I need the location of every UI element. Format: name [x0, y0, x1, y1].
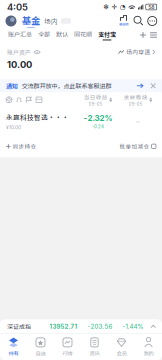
staticText: 全部 — [38, 30, 50, 38]
staticText: ✛ — [111, 3, 117, 11]
staticText: 09-05 — [129, 101, 143, 107]
button[interactable]: 持有 — [0, 334, 27, 360]
staticText: 4:05 — [7, 1, 28, 13]
button[interactable]: 通知 — [0, 79, 162, 92]
staticText: 基金吧 — [119, 22, 128, 27]
staticText: 深证成指 — [7, 322, 31, 331]
staticText: 资讯 — [89, 349, 99, 357]
button[interactable]: 基金吧 — [117, 15, 130, 26]
staticText: -0.24 — [92, 124, 104, 129]
staticText: 交流群开放中，点此联系客服进群 — [21, 81, 111, 90]
button[interactable]: 全部 — [35, 28, 53, 42]
staticText: 账户汇总 — [8, 30, 32, 38]
button[interactable]: 个人头像 — [5, 15, 17, 27]
button[interactable]: 同步持仓 — [6, 142, 37, 150]
button[interactable]: 关闭 — [143, 83, 156, 89]
button[interactable]: 标记 — [24, 94, 34, 106]
button[interactable]: 刷新 — [14, 94, 24, 106]
staticText: 会员 — [116, 349, 126, 357]
button[interactable]: 深证成指 — [0, 319, 162, 333]
staticText: -2.32% — [83, 113, 112, 123]
staticText: 我的 — [143, 349, 153, 357]
button[interactable]: 添加 — [136, 32, 150, 38]
button[interactable]: 自选 — [27, 334, 54, 360]
button[interactable]: 基金 — [17, 13, 44, 29]
staticText: 账户资产 — [7, 48, 31, 56]
button[interactable]: 永赢科技智选··· — [0, 107, 162, 135]
button[interactable]: 我的 — [135, 334, 162, 360]
staticText: 基金 — [22, 13, 40, 27]
staticText: 永赢科技智选··· — [6, 112, 69, 122]
button[interactable]: 设置 — [4, 94, 14, 106]
button[interactable]: 支付宝 — [95, 28, 119, 42]
staticText: 行情 — [62, 349, 72, 357]
staticText: -1.44% — [122, 323, 143, 330]
button[interactable]: 会员 — [108, 334, 135, 360]
button[interactable]: 场内 — [44, 16, 61, 26]
button[interactable]: 行情 — [54, 334, 81, 360]
staticText: -203.56 — [87, 323, 112, 330]
button[interactable]: 当日收益 — [84, 93, 112, 107]
staticText: 场内穿透 — [126, 48, 150, 56]
staticText: 自选 — [35, 349, 45, 357]
button[interactable]: 管理 — [150, 32, 157, 38]
button[interactable]: 批量加减仓 — [120, 142, 156, 150]
staticText: ¥10.00 — [6, 124, 21, 130]
button[interactable]: 关联板块 — [124, 93, 152, 107]
staticText: 同步持仓 — [13, 142, 37, 150]
staticText: ◔ — [120, 3, 126, 11]
staticText: 13952.71 — [49, 323, 77, 330]
button[interactable]: 视图 — [34, 94, 44, 106]
staticText: 场内 — [44, 16, 58, 26]
staticText: 默认 — [56, 30, 68, 38]
button[interactable]: 账户汇总 — [5, 28, 35, 42]
staticText: 通知 — [6, 81, 18, 90]
staticText: 09-05 — [89, 101, 103, 107]
button[interactable]: 更多 — [147, 16, 157, 26]
staticText: 当日收益 — [84, 93, 108, 101]
staticText: 关联板块 — [124, 93, 148, 101]
staticText: ✻ — [103, 3, 109, 11]
staticText: 58 — [148, 4, 154, 10]
staticText: 持有 — [8, 349, 18, 357]
staticText: — — [135, 117, 140, 125]
button[interactable]: 搜索 — [130, 16, 147, 26]
staticText: 10.00 — [7, 59, 32, 70]
staticText: 支付宝 — [98, 30, 116, 38]
staticText: 同花顺 — [74, 30, 92, 38]
staticText: 批量加减仓 — [120, 142, 150, 150]
button[interactable]: 默认 — [53, 28, 71, 42]
button[interactable]: 同花顺 — [71, 28, 95, 42]
button[interactable]: 资讯 — [81, 334, 108, 360]
button[interactable]: 场内穿透 — [118, 48, 156, 56]
